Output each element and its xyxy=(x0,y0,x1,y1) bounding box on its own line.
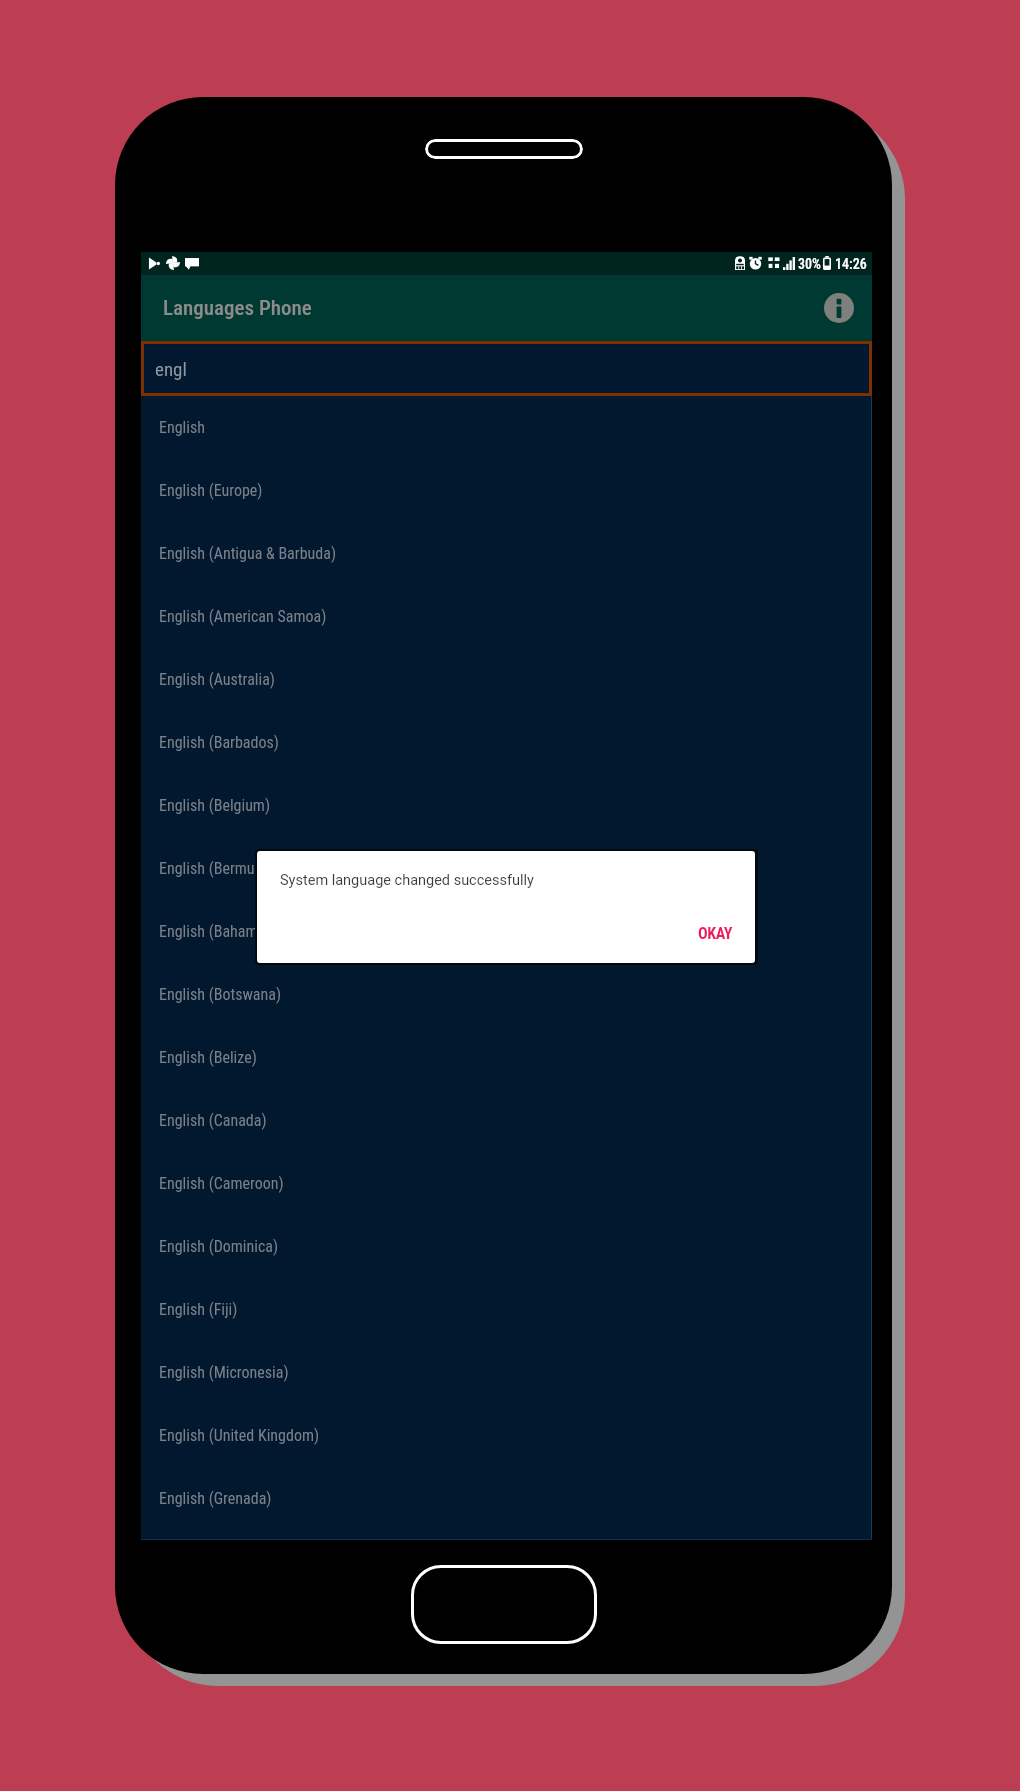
button[interactable]: English (American Samoa) xyxy=(141,585,872,648)
button[interactable]: English (Bermuda) xyxy=(141,837,872,900)
button[interactable]: English (Fiji) xyxy=(141,1278,872,1341)
button[interactable]: English (Europe) xyxy=(141,459,872,522)
staticText: engl xyxy=(155,358,187,380)
staticText: 14:26 xyxy=(835,256,867,272)
staticText: English (Bahamas) xyxy=(159,922,278,941)
button[interactable]: English (Barbados) xyxy=(141,711,872,774)
staticText: English (Cameroon) xyxy=(159,1174,284,1193)
staticText: English xyxy=(159,418,205,437)
button[interactable]: OKAY xyxy=(690,918,740,949)
staticText: English (Barbados) xyxy=(159,733,279,752)
staticText: OKAY xyxy=(698,924,732,943)
staticText: 30% xyxy=(798,256,821,272)
staticText: English (Bermuda) xyxy=(159,859,276,878)
button[interactable]: English (Canada) xyxy=(141,1089,872,1152)
button[interactable]: English (Cameroon) xyxy=(141,1152,872,1215)
staticText: English (Belize) xyxy=(159,1048,257,1067)
button[interactable]: engl xyxy=(141,341,872,396)
staticText: English (Fiji) xyxy=(159,1300,238,1319)
button[interactable]: English (Botswana) xyxy=(141,963,872,1026)
button[interactable]: English (Australia) xyxy=(141,648,872,711)
staticText: English (Belgium) xyxy=(159,796,271,815)
staticText: English (United Kingdom) xyxy=(159,1426,320,1445)
staticText: English (Antigua & Barbuda) xyxy=(159,544,336,563)
button[interactable]: English (Dominica) xyxy=(141,1215,872,1278)
staticText: Languages Phone xyxy=(163,296,312,321)
staticText: English (Canada) xyxy=(159,1111,267,1130)
staticText: English (Australia) xyxy=(159,670,275,689)
button[interactable]: English (Bahamas) xyxy=(141,900,872,963)
button[interactable]: English xyxy=(141,396,872,459)
staticText: English (Dominica) xyxy=(159,1237,279,1256)
button[interactable]: Info xyxy=(817,286,861,330)
staticText: English (American Samoa) xyxy=(159,607,327,626)
button[interactable]: English (Belgium) xyxy=(141,774,872,837)
staticText: System language changed successfully xyxy=(280,872,534,889)
button[interactable]: English (United Kingdom) xyxy=(141,1404,872,1467)
button[interactable]: English (Antigua & Barbuda) xyxy=(141,522,872,585)
button[interactable]: English (Micronesia) xyxy=(141,1341,872,1404)
button[interactable]: English (Belize) xyxy=(141,1026,872,1089)
staticText: English (Micronesia) xyxy=(159,1363,289,1382)
staticText: English (Botswana) xyxy=(159,985,282,1004)
button[interactable]: English (Grenada) xyxy=(141,1467,872,1530)
staticText: English (Grenada) xyxy=(159,1489,272,1508)
staticText: English (Europe) xyxy=(159,481,263,500)
